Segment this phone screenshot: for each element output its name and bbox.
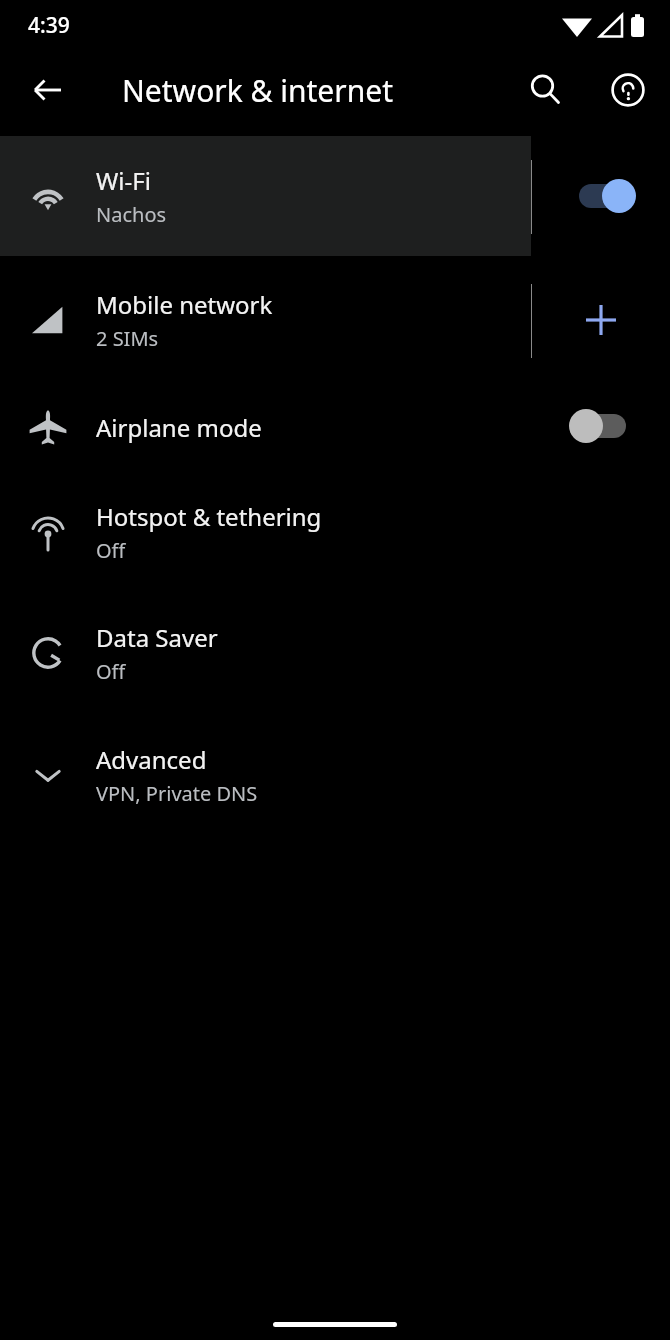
staticText: Hotspot & tethering [96, 500, 322, 533]
staticText: Off [96, 658, 126, 685]
button[interactable]: Airplane mode [0, 384, 670, 470]
staticText: Nachos [96, 201, 167, 228]
button[interactable]: Add SIM [569, 288, 633, 352]
staticText: Off [96, 537, 126, 564]
staticText: Data Saver [96, 621, 218, 654]
button[interactable]: Airplane mode off [561, 396, 633, 456]
button[interactable]: Hotspot & tethering [0, 473, 670, 591]
staticText: Advanced [96, 743, 207, 776]
staticText: Wi-Fi [96, 164, 151, 197]
staticText: Airplane mode [96, 411, 262, 444]
staticText: 4:39 [28, 11, 70, 40]
staticText: Mobile network [96, 288, 273, 321]
button[interactable]: Back [16, 58, 80, 122]
button[interactable]: Data Saver [0, 594, 670, 712]
button[interactable]: Search [514, 58, 578, 122]
button[interactable]: Advanced [0, 716, 670, 834]
button[interactable]: Wi-Fi on [572, 166, 644, 226]
button[interactable]: Mobile network [0, 260, 670, 380]
staticText: VPN, Private DNS [96, 780, 258, 807]
button[interactable]: Help [596, 58, 660, 122]
staticText: Network & internet [122, 70, 393, 111]
button[interactable]: Wi-Fi [0, 136, 670, 256]
staticText: 2 SIMs [96, 325, 159, 352]
